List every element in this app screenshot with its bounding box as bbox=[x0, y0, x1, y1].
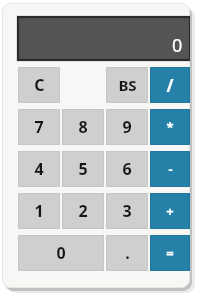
button[interactable]: 2 bbox=[62, 193, 104, 229]
staticText: 5 bbox=[78, 158, 88, 180]
button[interactable]: C bbox=[18, 67, 60, 103]
button[interactable]: 5 bbox=[62, 151, 104, 187]
button[interactable]: BS bbox=[106, 67, 148, 103]
button[interactable]: 0 bbox=[18, 235, 104, 271]
button[interactable]: Minus bbox=[150, 151, 190, 187]
staticText: 6 bbox=[122, 158, 132, 180]
staticText: * bbox=[166, 118, 174, 136]
button[interactable]: Divide bbox=[150, 67, 190, 103]
staticText: / bbox=[166, 74, 174, 97]
staticText: 1 bbox=[34, 200, 44, 222]
button[interactable]: Multiply bbox=[150, 109, 190, 145]
staticText: 7 bbox=[34, 116, 44, 138]
button[interactable]: 0 bbox=[18, 17, 190, 60]
button[interactable]: 1 bbox=[18, 193, 60, 229]
staticText: 3 bbox=[122, 200, 132, 222]
staticText: = bbox=[166, 244, 174, 262]
button[interactable]: Equals bbox=[150, 235, 190, 271]
staticText: 8 bbox=[78, 116, 88, 138]
staticText: + bbox=[166, 202, 174, 220]
staticText: BS bbox=[118, 75, 137, 95]
button[interactable]: 8 bbox=[62, 109, 104, 145]
staticText: - bbox=[168, 160, 173, 178]
staticText: 0 bbox=[172, 33, 183, 58]
button[interactable]: 3 bbox=[106, 193, 148, 229]
button[interactable]: 4 bbox=[18, 151, 60, 187]
staticText: 4 bbox=[34, 158, 44, 180]
staticText: C bbox=[34, 74, 45, 96]
button[interactable]: 9 bbox=[106, 109, 148, 145]
button[interactable]: Plus bbox=[150, 193, 190, 229]
button[interactable]: 6 bbox=[106, 151, 148, 187]
staticText: . bbox=[125, 242, 130, 264]
staticText: 9 bbox=[122, 116, 132, 138]
button[interactable]: 7 bbox=[18, 109, 60, 145]
button[interactable]: . bbox=[106, 235, 148, 271]
staticText: 2 bbox=[78, 200, 88, 222]
staticText: 0 bbox=[56, 242, 66, 264]
